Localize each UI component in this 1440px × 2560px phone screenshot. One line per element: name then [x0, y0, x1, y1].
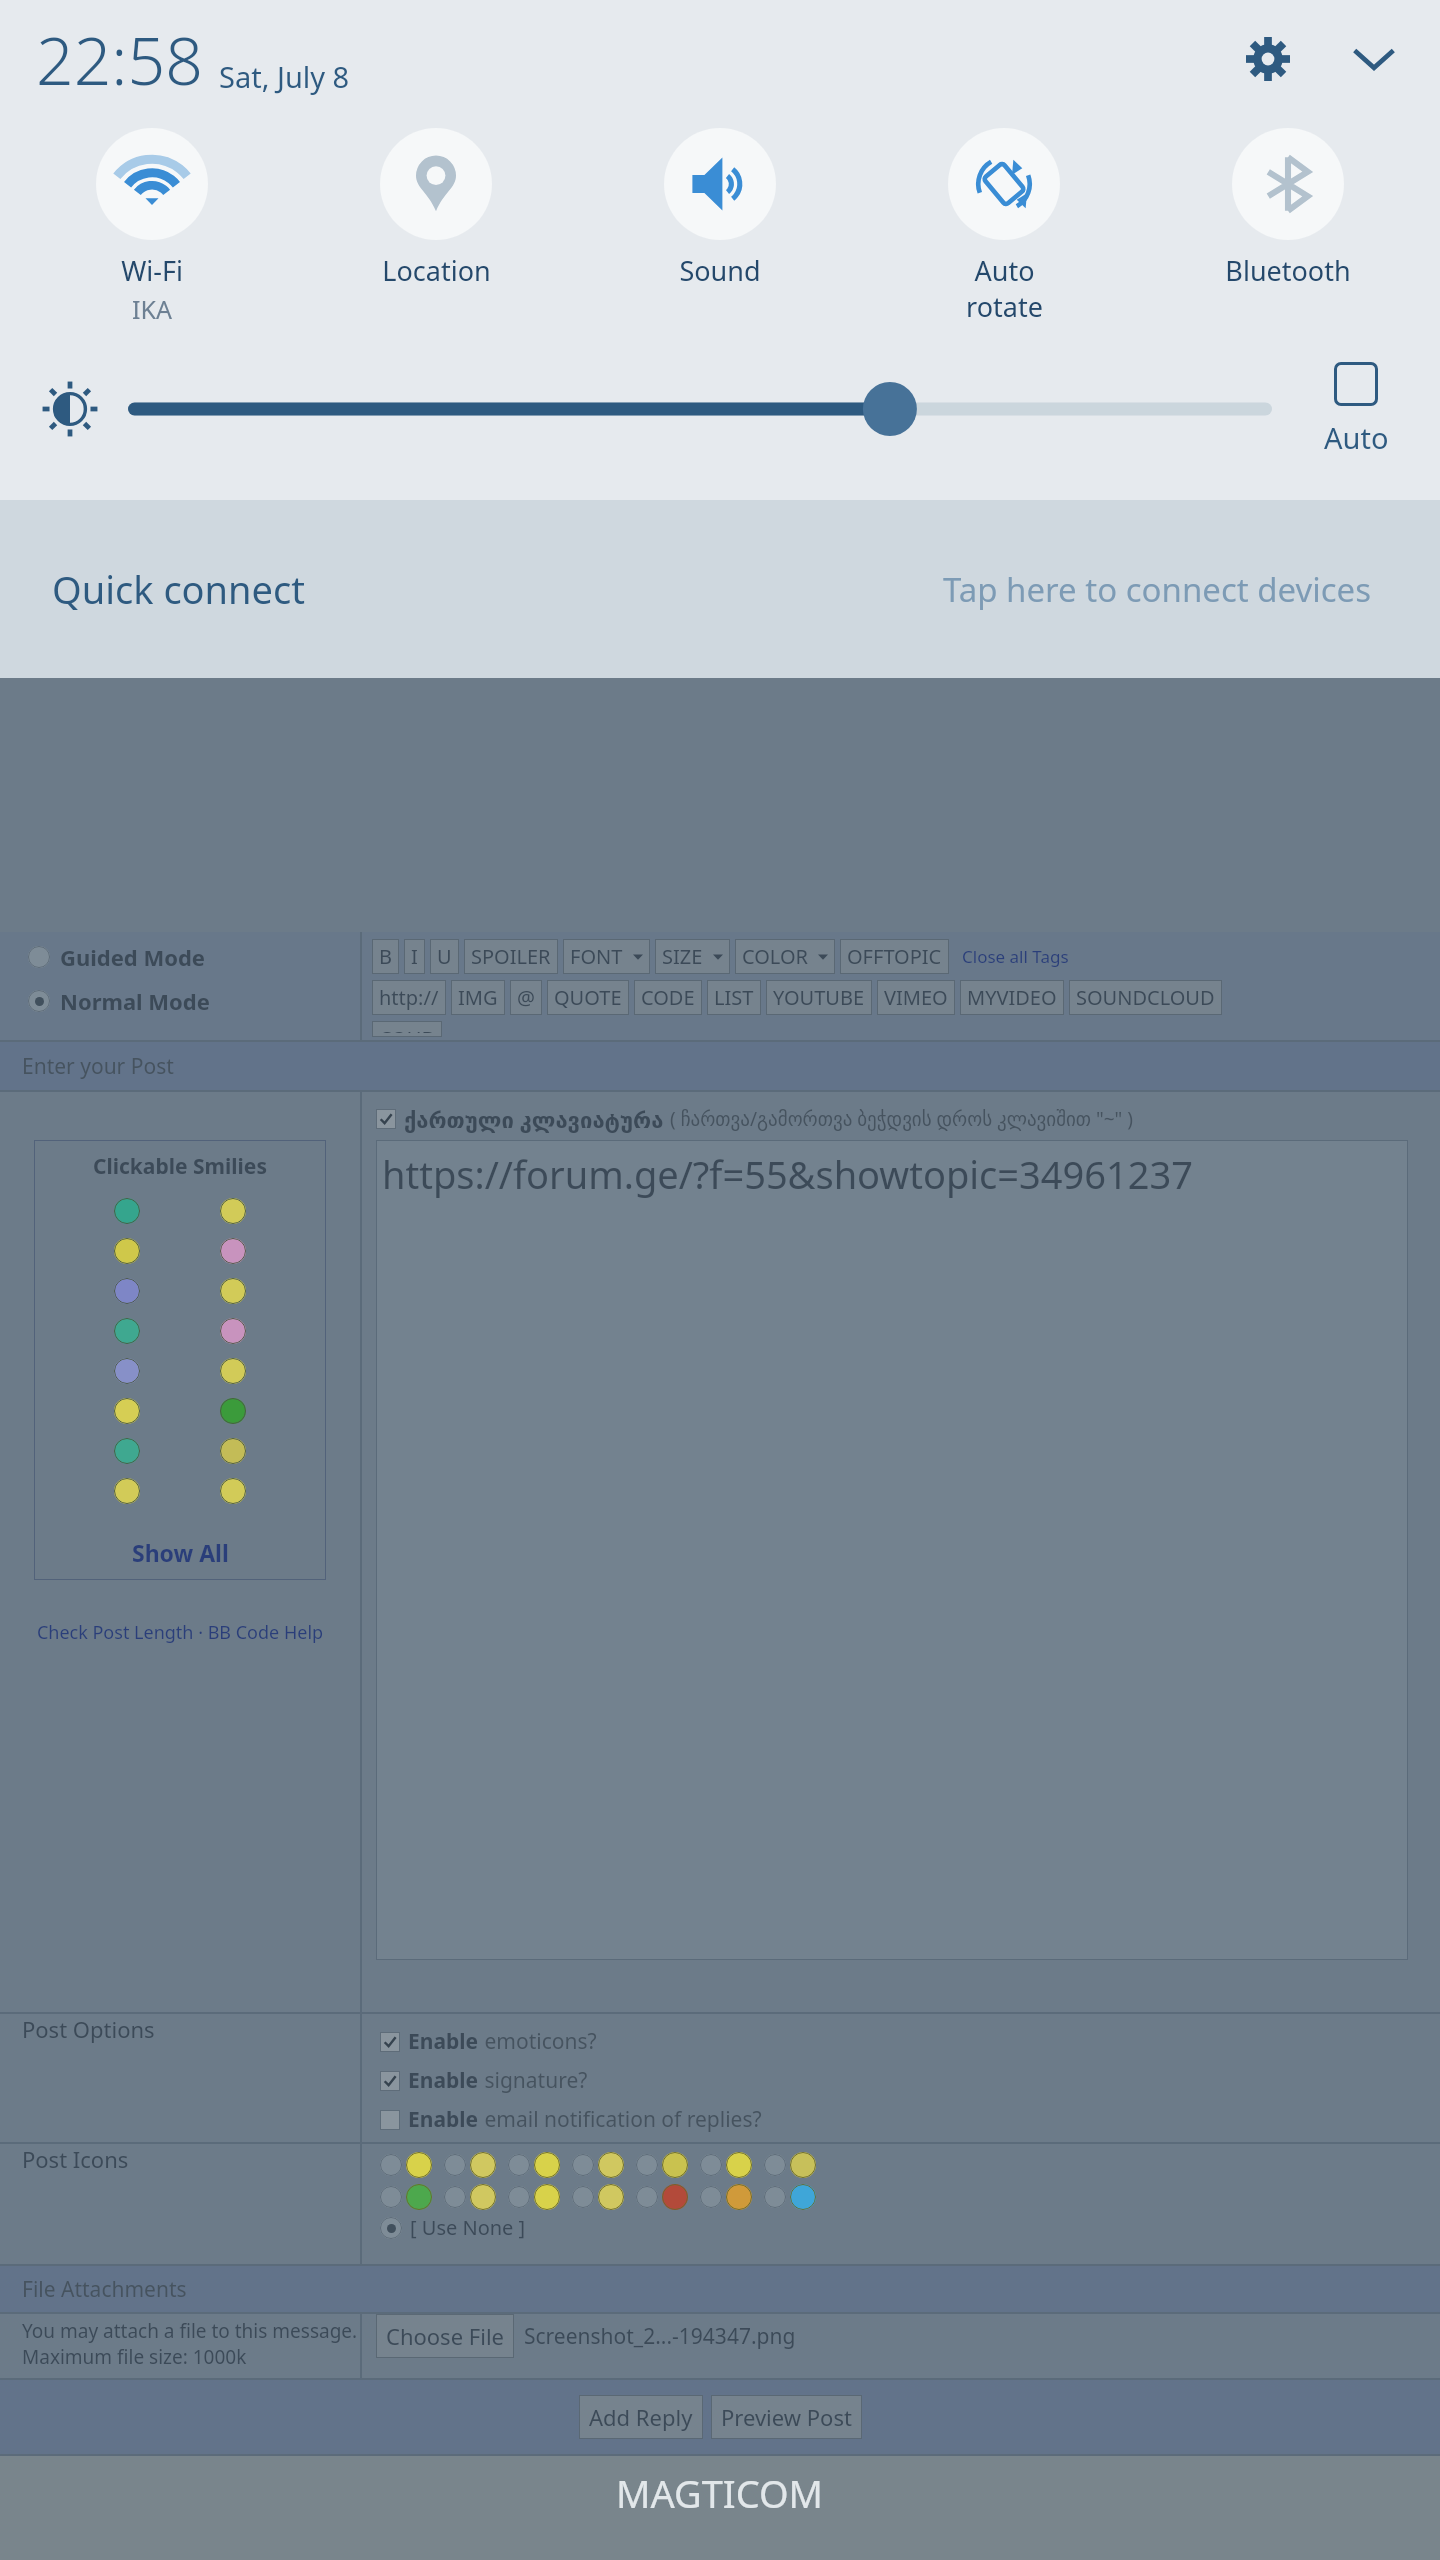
staticText: Check Post Length · BB Code Help	[0, 1620, 360, 1645]
button[interactable]: IMG	[451, 980, 505, 1015]
staticText: File Attachments	[22, 2275, 187, 2304]
button[interactable]: http://	[372, 980, 446, 1015]
staticText: YOUTUBE	[773, 984, 865, 1011]
staticText: email notification of replies?	[479, 2105, 762, 2134]
button[interactable]: Enable	[380, 2027, 597, 2056]
button[interactable]: SIZE	[655, 939, 730, 974]
staticText: SIZE	[662, 943, 703, 970]
staticText: Auto rotate	[966, 252, 1043, 325]
button[interactable]	[128, 361, 1272, 457]
staticText: Wi-Fi	[121, 252, 183, 289]
staticText: Clickable Smilies	[93, 1152, 267, 1181]
button[interactable]: Guided Mode	[28, 942, 206, 972]
button[interactable]: Wi-Fi	[10, 126, 294, 326]
button[interactable]	[114, 1238, 140, 1264]
button[interactable]: Auto	[1290, 362, 1422, 457]
button[interactable]: QUOTE	[547, 980, 629, 1015]
button[interactable]: VIMEO	[877, 980, 955, 1015]
button[interactable]: Settings	[1228, 19, 1308, 99]
button[interactable]	[220, 1278, 246, 1304]
staticText: COLOR	[742, 943, 808, 970]
button[interactable]: MYVIDEO	[960, 980, 1064, 1015]
staticText: Guided Mode	[60, 942, 206, 972]
button[interactable]	[114, 1198, 140, 1224]
staticText: Auto	[1324, 418, 1389, 457]
button[interactable]: Collapse	[1334, 19, 1414, 99]
staticText: OFFTOPIC	[847, 943, 942, 970]
button[interactable]: Normal Mode	[28, 986, 210, 1016]
staticText: ( ჩართვა/გამორთვა ბეჭდვის დროს კლავიშით …	[670, 1106, 1134, 1132]
button[interactable]: Show All	[132, 1537, 229, 1568]
staticText: Screenshot_2...-194347.png	[524, 2322, 796, 2351]
staticText: SOUNDCLOUD	[1076, 984, 1215, 1011]
button[interactable]: Enable	[380, 2066, 588, 2095]
staticText: Tap here to connect devices	[943, 567, 1372, 612]
button[interactable]: COLOR	[735, 939, 835, 974]
button[interactable]: YOUTUBE	[766, 980, 872, 1015]
staticText: COUB	[379, 1025, 435, 1033]
staticText: FONT	[570, 943, 623, 970]
button[interactable]: SPOILER	[464, 939, 558, 974]
button[interactable]: SOUNDCLOUD	[1069, 980, 1222, 1015]
staticText: You may attach a file to this message.	[22, 2318, 358, 2344]
button[interactable]	[114, 1398, 140, 1424]
staticText: U	[437, 943, 452, 970]
button[interactable]	[220, 1238, 246, 1264]
staticText: http://	[379, 984, 439, 1011]
staticText: I	[411, 943, 418, 970]
staticText: IMG	[458, 984, 498, 1011]
staticText: Quick connect	[52, 563, 305, 615]
button[interactable]: I	[404, 939, 425, 974]
button[interactable]: OFFTOPIC	[840, 939, 949, 974]
staticText: Enable	[408, 2105, 479, 2134]
button[interactable]	[114, 1318, 140, 1344]
staticText: Sound	[679, 252, 761, 289]
button[interactable]	[220, 1398, 246, 1424]
button[interactable]: Quick connect	[0, 500, 1440, 678]
staticText: MAGTICOM	[616, 2467, 824, 2519]
staticText: Sat, July 8	[219, 57, 350, 96]
staticText: ქართული კლავიატურა	[404, 1104, 664, 1134]
button[interactable]	[114, 1358, 140, 1384]
staticText: Location	[382, 252, 491, 289]
button[interactable]: COUB	[372, 1021, 442, 1037]
staticText: Close all Tags	[962, 945, 1069, 968]
button[interactable]: Location	[294, 126, 578, 289]
button[interactable]	[220, 1438, 246, 1464]
staticText: QUOTE	[554, 984, 622, 1011]
button[interactable]: Choose File	[376, 2314, 514, 2358]
button[interactable]: LIST	[707, 980, 761, 1015]
button[interactable]: Preview Post	[711, 2395, 862, 2439]
button[interactable]: B	[372, 939, 399, 974]
staticText: Preview Post	[721, 2402, 852, 2432]
staticText: [ Use None ]	[410, 2214, 526, 2241]
staticText: 22:58	[36, 14, 203, 104]
staticText: VIMEO	[884, 984, 948, 1011]
staticText: Maximum file size: 1000k	[22, 2344, 247, 2370]
staticText: Enable	[408, 2066, 479, 2095]
staticText: SPOILER	[471, 943, 551, 970]
staticText: IKA	[132, 292, 172, 326]
button[interactable]: Brightness	[22, 361, 118, 457]
staticText: signature?	[479, 2066, 588, 2095]
button[interactable]	[114, 1478, 140, 1504]
staticText: B	[379, 943, 392, 970]
button[interactable]: Add Reply	[579, 2395, 703, 2439]
staticText: Add Reply	[589, 2402, 693, 2432]
staticText: https://forum.ge/?f=55&showtopic=3496123…	[382, 1148, 1193, 1200]
button[interactable]: Auto rotate	[862, 126, 1146, 325]
button[interactable]: U	[430, 939, 459, 974]
staticText: Enter your Post	[22, 1052, 174, 1081]
button[interactable]: CODE	[634, 980, 702, 1015]
button[interactable]: @	[510, 980, 542, 1015]
button[interactable]	[220, 1358, 246, 1384]
button[interactable]	[220, 1478, 246, 1504]
button[interactable]: Enable	[380, 2105, 762, 2134]
button[interactable]: Bluetooth	[1146, 126, 1430, 289]
button[interactable]	[220, 1198, 246, 1224]
button[interactable]: Sound	[578, 126, 862, 289]
button[interactable]: FONT	[563, 939, 650, 974]
button[interactable]	[220, 1318, 246, 1344]
button[interactable]	[114, 1438, 140, 1464]
button[interactable]	[114, 1278, 140, 1304]
